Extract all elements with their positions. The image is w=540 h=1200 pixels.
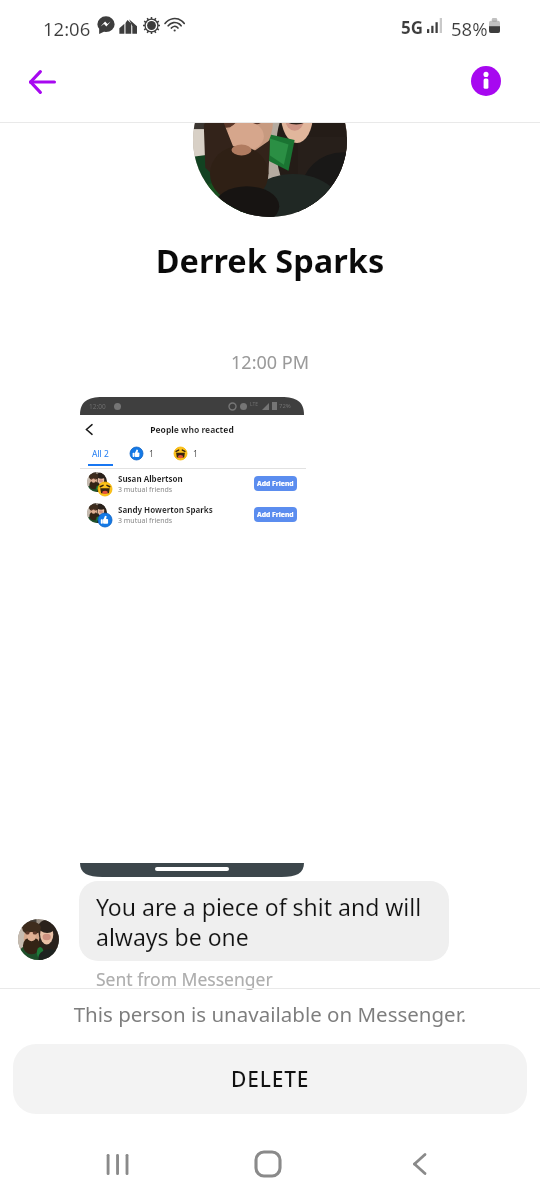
button[interactable]: Sandy Howerton Sparks bbox=[80, 499, 304, 530]
staticText: 1 bbox=[193, 448, 198, 460]
staticText: DELETE bbox=[231, 1065, 310, 1094]
button[interactable]: Recent apps bbox=[57, 1133, 177, 1195]
button[interactable]: Conversation information bbox=[464, 59, 508, 103]
staticText: Sandy Howerton Sparks bbox=[118, 504, 213, 515]
staticText: 58% bbox=[451, 16, 488, 41]
button[interactable]: Back bbox=[359, 1133, 479, 1195]
staticText: 12:00 PM bbox=[0, 350, 540, 375]
staticText: Add Friend bbox=[257, 479, 294, 488]
staticText: Sent from Messenger bbox=[96, 967, 273, 991]
staticText: 12:00 bbox=[89, 402, 106, 411]
button[interactable]: Back bbox=[20, 60, 64, 104]
staticText: 12:06 bbox=[43, 16, 91, 41]
button[interactable]: Home bbox=[208, 1133, 328, 1195]
staticText: 3 mutual friends bbox=[118, 485, 173, 495]
staticText: People who reacted bbox=[80, 424, 304, 436]
button[interactable]: DELETE bbox=[13, 1044, 527, 1114]
staticText: 1 bbox=[149, 448, 154, 460]
button[interactable]: You are a piece of shit and will always … bbox=[79, 881, 449, 961]
staticText: 72% bbox=[279, 402, 291, 410]
button[interactable]: Susan Albertson bbox=[80, 468, 304, 499]
staticText: You are a piece of shit and will always … bbox=[96, 891, 434, 952]
staticText: This person is unavailable on Messenger. bbox=[0, 1000, 540, 1028]
staticText: LTE bbox=[250, 401, 259, 408]
button[interactable]: Add Friend bbox=[254, 507, 297, 522]
staticText: Add Friend bbox=[257, 510, 294, 519]
staticText: 3 mutual friends bbox=[118, 516, 173, 526]
staticText: Derrek Sparks bbox=[0, 238, 540, 282]
staticText: All 2 bbox=[92, 448, 109, 460]
staticText: 5G bbox=[401, 16, 424, 39]
staticText: Susan Albertson bbox=[118, 473, 183, 484]
button[interactable]: Add Friend bbox=[254, 476, 297, 491]
